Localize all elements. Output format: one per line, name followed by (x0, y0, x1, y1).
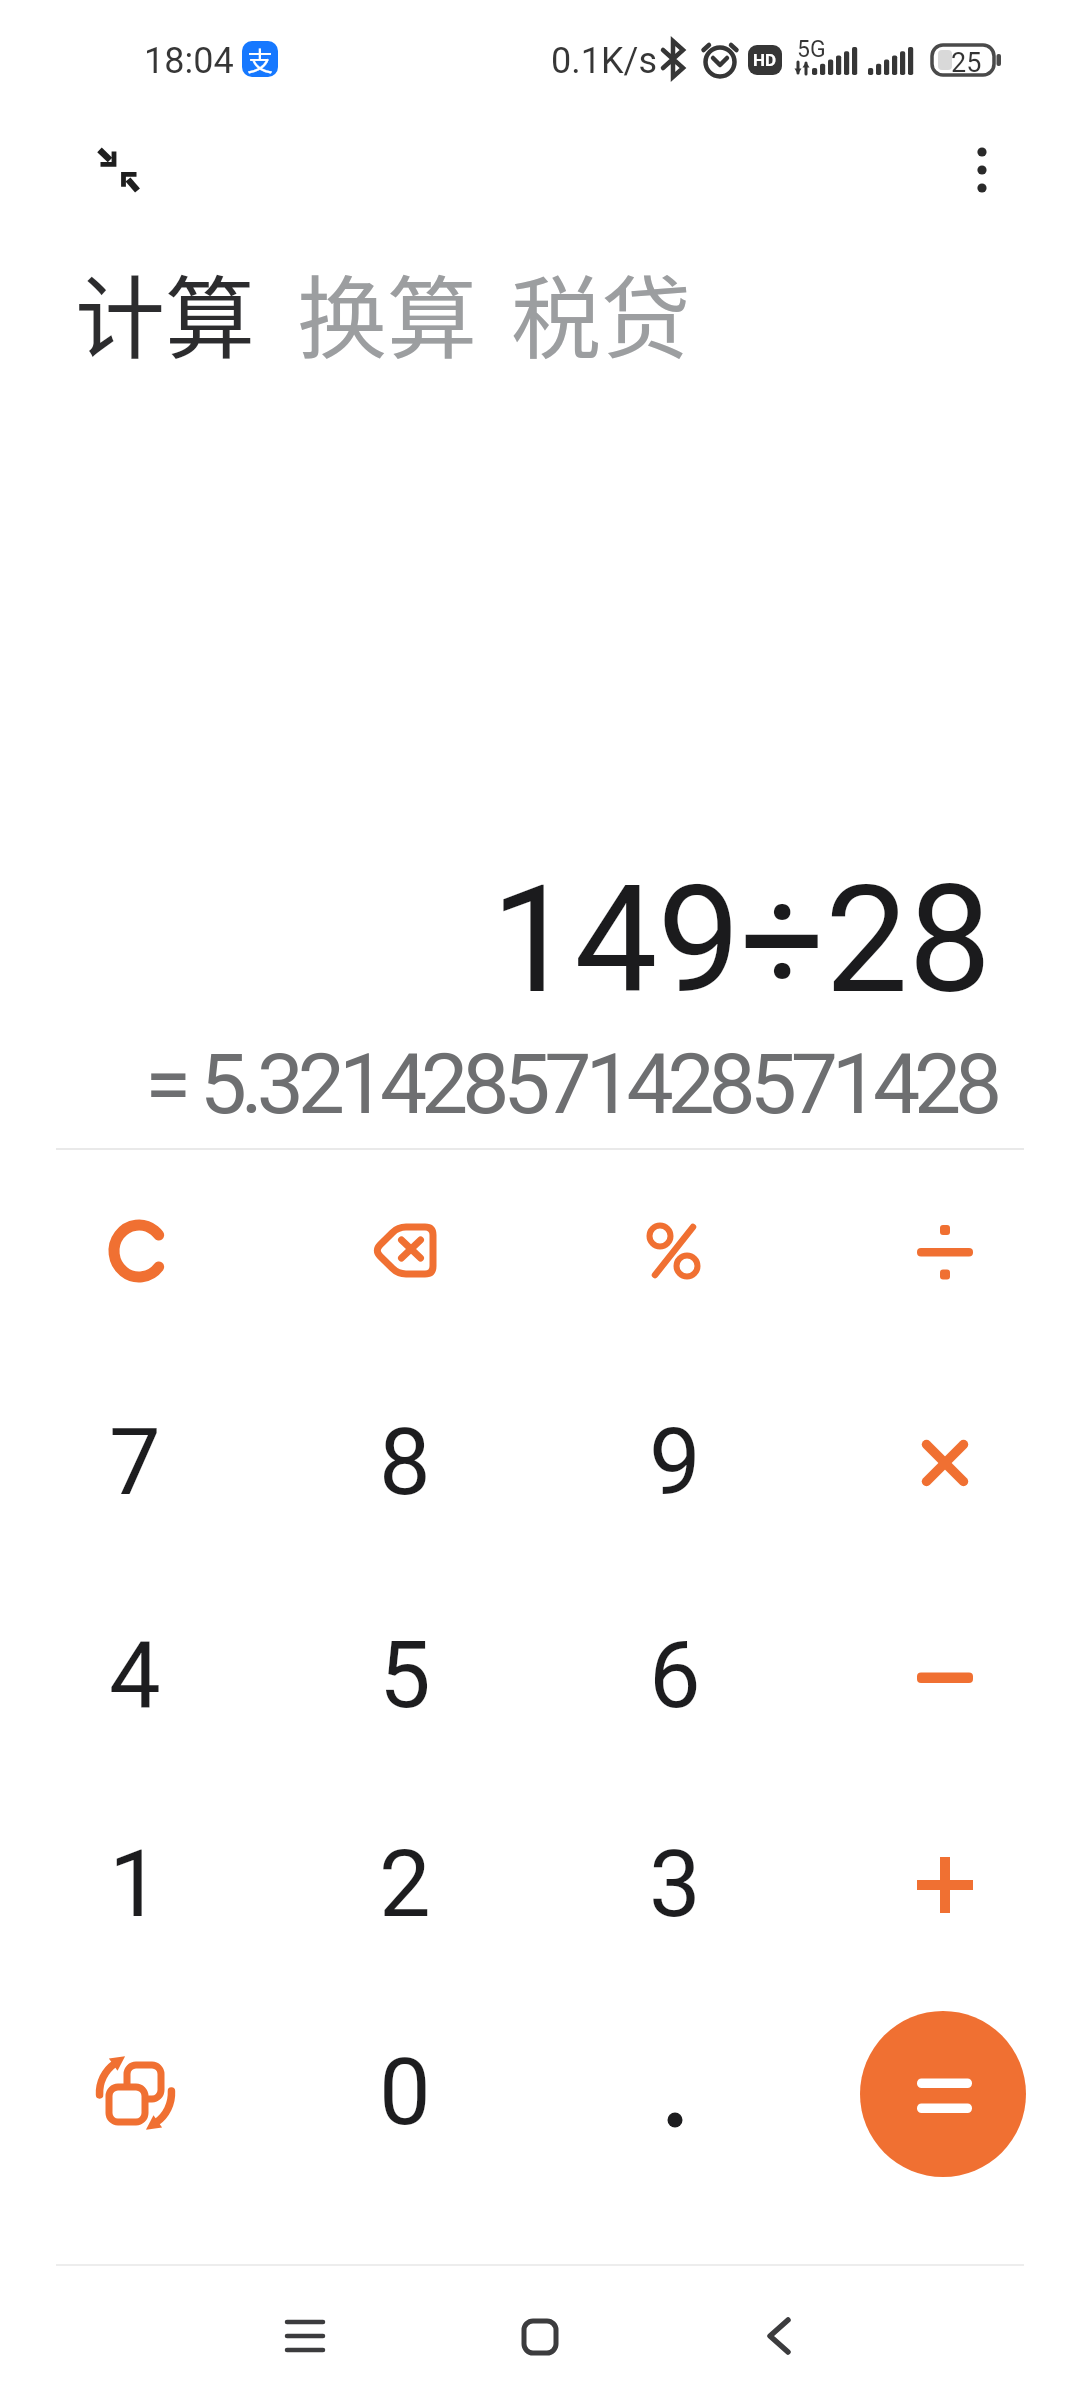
button[interactable] (15, 1154, 255, 1348)
button[interactable] (718, 2276, 838, 2396)
button[interactable]: 8 (285, 1366, 525, 1560)
button[interactable] (480, 2276, 600, 2396)
staticText: 5G (797, 36, 826, 63)
button[interactable]: 7 (15, 1366, 255, 1560)
button[interactable]: 换算 (297, 247, 477, 377)
button[interactable] (825, 1579, 1065, 1773)
button[interactable] (860, 2011, 1026, 2177)
button[interactable]: 9 (555, 1366, 795, 1560)
staticText: 8 (379, 1409, 431, 1517)
staticText: 0 (379, 2039, 431, 2147)
button[interactable] (825, 1154, 1065, 1348)
button[interactable] (555, 1154, 795, 1348)
button[interactable] (88, 138, 150, 200)
staticText: 计算 (75, 247, 255, 377)
staticText: 3 (649, 1831, 701, 1939)
staticText: 5 (379, 1622, 431, 1730)
staticText: 18:04 (144, 40, 234, 82)
staticText: 25 (951, 47, 982, 79)
staticText: 2 (379, 1831, 431, 1939)
button[interactable]: 计算 (75, 247, 255, 377)
staticText: 9 (649, 1409, 701, 1517)
staticText: 换算 (297, 247, 477, 377)
staticText: 税贷 (511, 247, 691, 377)
staticText: = 5.321428571428571428 (145, 1035, 997, 1133)
staticText: 1 (109, 1831, 161, 1939)
staticText: 0.1K/s (551, 40, 657, 82)
button[interactable] (952, 135, 1012, 205)
button[interactable] (285, 1154, 525, 1348)
staticText: HD (753, 50, 777, 70)
button[interactable]: 5 (285, 1579, 525, 1773)
button[interactable]: 2 (285, 1788, 525, 1982)
staticText: 4 (109, 1622, 161, 1730)
button[interactable] (245, 2276, 365, 2396)
button[interactable] (825, 1366, 1065, 1560)
button[interactable]: 6 (555, 1579, 795, 1773)
button[interactable]: 1 (15, 1788, 255, 1982)
staticText: 支 (247, 41, 274, 77)
staticText: 6 (649, 1622, 701, 1730)
button[interactable]: 0 (285, 1996, 525, 2190)
button[interactable]: 3 (555, 1788, 795, 1982)
button[interactable]: 4 (15, 1579, 255, 1773)
button[interactable] (825, 1788, 1065, 1982)
staticText: 7 (109, 1409, 161, 1517)
staticText: 149÷28 (491, 854, 992, 1027)
button[interactable] (15, 1996, 255, 2190)
button[interactable] (555, 1996, 795, 2190)
button[interactable]: 税贷 (511, 247, 691, 377)
